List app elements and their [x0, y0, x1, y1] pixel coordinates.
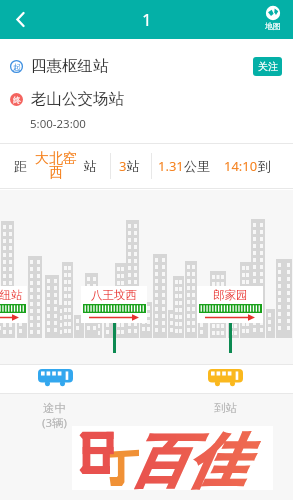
button[interactable]: Back	[0, 0, 40, 39]
staticText: 四惠枢纽站	[0, 288, 23, 302]
staticText: 四惠枢纽站	[31, 56, 109, 76]
staticText: 关注	[258, 60, 278, 73]
staticText: 到	[258, 158, 271, 174]
staticText: 地图	[265, 21, 281, 31]
staticText: 到站	[214, 401, 237, 415]
staticText: 3	[119, 157, 127, 175]
staticText: 1.31	[158, 157, 184, 175]
button[interactable]: 关注	[253, 57, 282, 76]
staticText: 老山公交场站	[31, 89, 124, 109]
staticText: 距	[14, 158, 27, 174]
staticText: 14:10	[224, 157, 258, 175]
button[interactable]: Buses on the way	[38, 369, 73, 386]
staticText: 郎家园	[213, 288, 248, 302]
staticText: (3辆)	[42, 415, 67, 431]
staticText: 百佳	[129, 425, 279, 498]
button[interactable]: Buses arriving	[208, 369, 243, 386]
staticText: 1	[142, 8, 152, 31]
staticText: 大北窑西	[34, 150, 78, 182]
staticText: 5:00-23:00	[30, 116, 86, 132]
staticText: 起	[13, 62, 21, 72]
button[interactable]: 地图	[253, 0, 293, 39]
staticText: 公里	[184, 158, 210, 174]
staticText: 站	[84, 158, 97, 174]
staticText: 终	[13, 95, 21, 105]
staticText: 途中	[43, 401, 66, 415]
staticText: 站	[127, 158, 140, 174]
staticText: 八王坟西	[91, 288, 137, 302]
